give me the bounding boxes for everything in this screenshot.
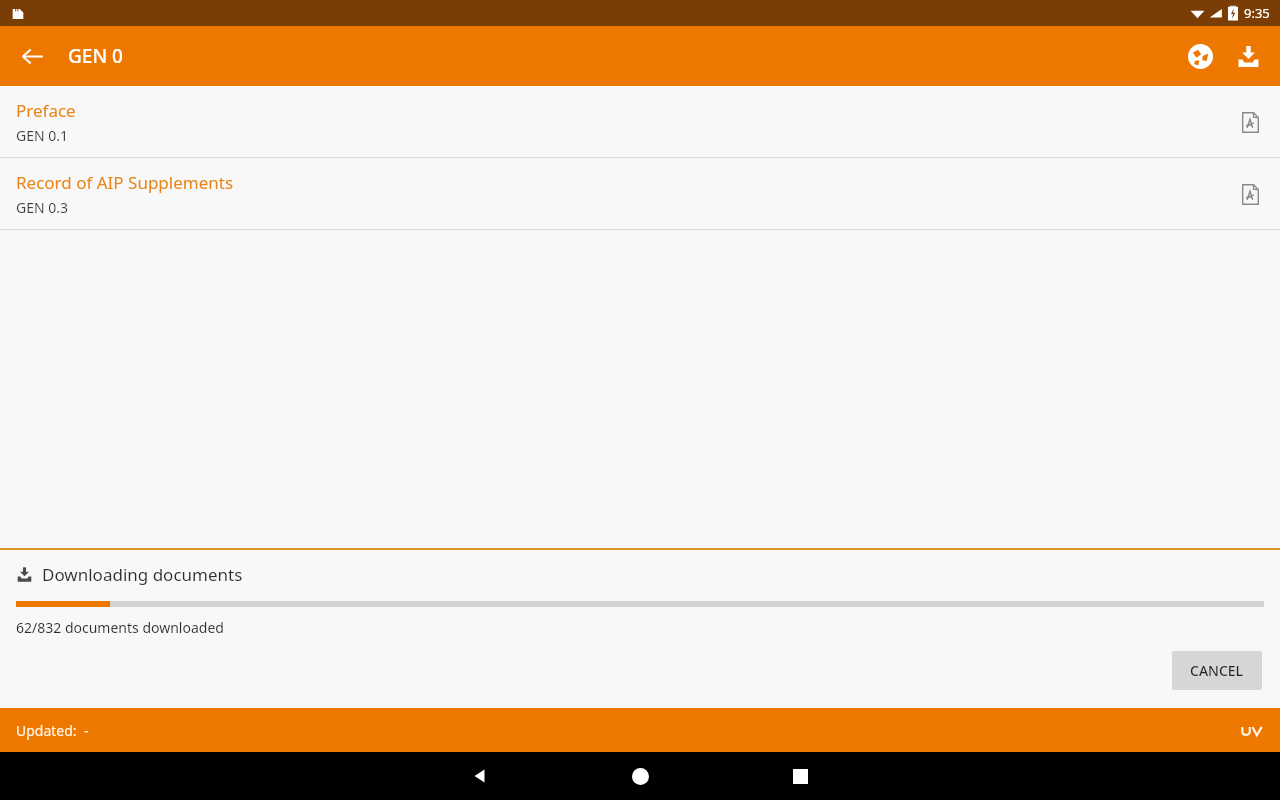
button[interactable]: CANCEL <box>1172 651 1262 690</box>
staticText: Preface <box>16 99 76 122</box>
button[interactable]: Open PDF <box>1230 174 1270 214</box>
button[interactable]: Back <box>8 32 56 80</box>
button[interactable]: Download all <box>1224 32 1272 80</box>
staticText: GEN 0.1 <box>16 126 69 145</box>
button[interactable]: Open PDF <box>1230 102 1270 142</box>
button[interactable]: Recent apps <box>720 752 880 800</box>
button[interactable]: Back <box>400 752 560 800</box>
button[interactable]: Preface <box>0 86 1280 157</box>
staticText: Updated: - <box>16 721 89 740</box>
staticText: GEN 0.3 <box>16 198 69 217</box>
button[interactable]: Record of AIP Supplements <box>0 158 1280 229</box>
staticText: Downloading documents <box>42 563 243 586</box>
staticText: 9:35 <box>1244 4 1270 22</box>
staticText: 62/832 documents downloaded <box>16 618 224 637</box>
button[interactable]: Home <box>560 752 720 800</box>
staticText: CANCEL <box>1190 661 1244 680</box>
button[interactable]: About <box>1238 716 1266 744</box>
staticText: Record of AIP Supplements <box>16 171 234 194</box>
button[interactable]: Language <box>1176 32 1224 80</box>
staticText: GEN 0 <box>68 43 123 69</box>
